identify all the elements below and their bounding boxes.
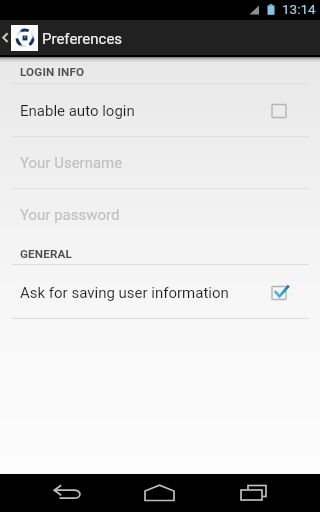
staticText: Ask for saving user information: [20, 284, 269, 302]
button[interactable]: Home: [107, 474, 213, 512]
staticText: GENERAL: [20, 247, 73, 261]
staticText: 13:14: [282, 1, 316, 17]
button[interactable]: Back: [0, 474, 107, 512]
button[interactable]: Recent apps: [213, 474, 320, 512]
button[interactable]: Your password: [0, 189, 320, 241]
button[interactable]: Your Username: [0, 137, 320, 189]
staticText: Your Username: [20, 154, 289, 172]
staticText: LOGIN INFO: [20, 65, 85, 79]
button[interactable]: Navigate up: [0, 20, 320, 55]
staticText: Enable auto login: [20, 102, 269, 120]
button[interactable]: Enable auto login: [0, 85, 320, 137]
button[interactable]: Ask for saving user information: [0, 266, 320, 319]
staticText: Your password: [20, 206, 289, 224]
staticText: Preferences: [42, 30, 123, 48]
